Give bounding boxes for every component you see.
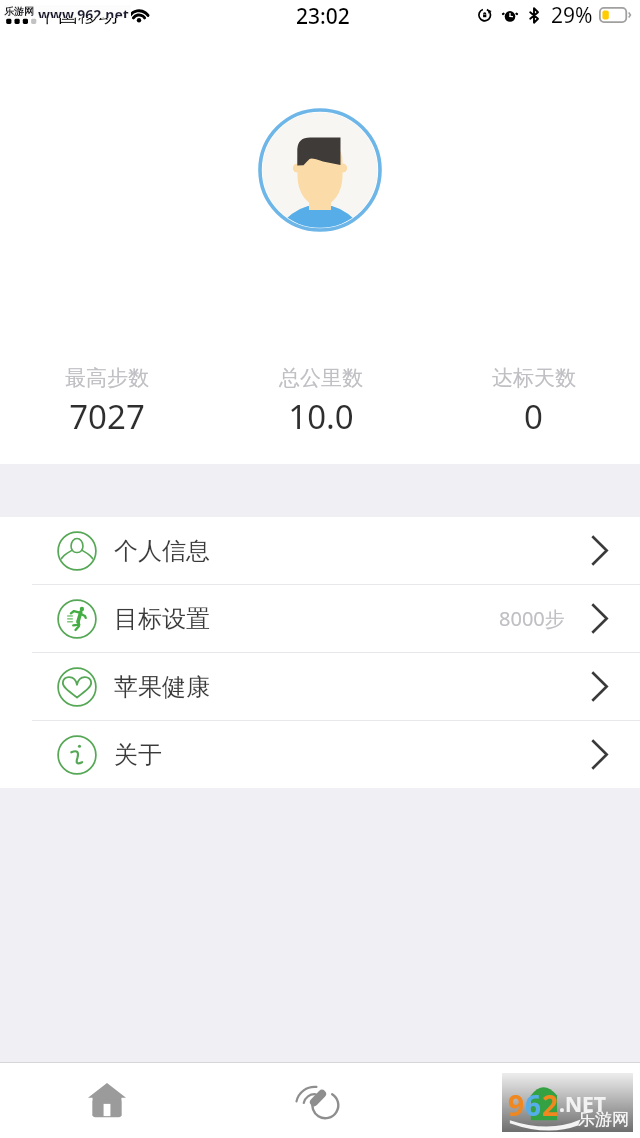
- staticText: 23:02: [296, 2, 350, 31]
- staticText: 苹果健康: [114, 672, 210, 702]
- staticText: 目标设置: [114, 604, 210, 634]
- staticText: 0: [524, 394, 543, 439]
- button[interactable]: Home: [0, 1063, 214, 1138]
- button[interactable]: 目标设置: [0, 585, 640, 652]
- button[interactable]: Activity: [214, 1063, 427, 1138]
- staticText: 乐游网: [4, 5, 34, 18]
- staticText: .NET: [559, 1090, 606, 1119]
- button[interactable]: 个人信息: [0, 517, 640, 584]
- button[interactable]: Profile: [427, 1063, 640, 1138]
- staticText: 个人信息: [114, 536, 210, 566]
- button[interactable]: 苹果健康: [0, 653, 640, 720]
- staticText: 达标天数: [492, 365, 576, 391]
- staticText: 最高步数: [65, 365, 149, 391]
- staticText: 9: [508, 1086, 525, 1124]
- staticText: 总公里数: [279, 365, 363, 391]
- staticText: 关于: [114, 740, 162, 770]
- staticText: www.962.net: [38, 5, 129, 18]
- staticText: 乐游网: [578, 1109, 629, 1130]
- staticText: 6: [525, 1086, 542, 1124]
- staticText: 8000步: [499, 605, 565, 632]
- staticText: 2: [542, 1086, 559, 1124]
- staticText: 10.0: [288, 394, 354, 439]
- staticText: 7027: [69, 394, 145, 439]
- staticText: 29%: [551, 1, 593, 29]
- button[interactable]: 关于: [0, 721, 640, 788]
- staticText: 中国移动: [38, 3, 118, 28]
